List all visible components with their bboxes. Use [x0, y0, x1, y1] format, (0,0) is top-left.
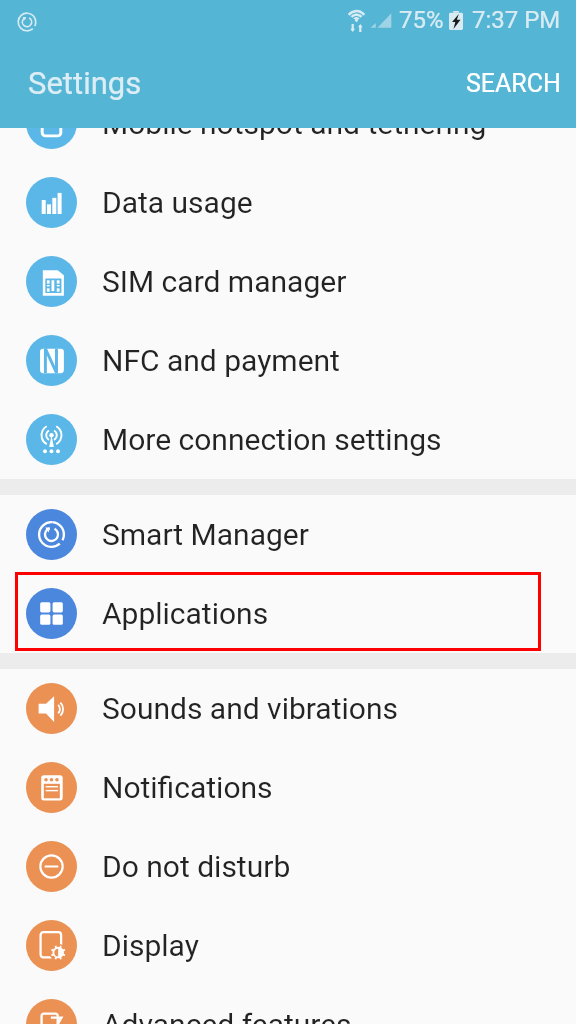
- staticText: Do not disturb: [102, 849, 291, 884]
- staticText: 7:37 PM: [472, 6, 561, 34]
- staticText: Mobile hotspot and tethering: [102, 106, 487, 141]
- staticText: 75%: [399, 6, 444, 34]
- button[interactable]: Sounds and vibrations: [0, 669, 576, 748]
- button[interactable]: SIM card manager: [0, 242, 576, 321]
- staticText: Settings: [28, 65, 142, 101]
- staticText: Advanced features: [102, 1007, 352, 1024]
- button[interactable]: Notifications: [0, 748, 576, 827]
- staticText: NFC and payment: [102, 343, 340, 378]
- staticText: Sounds and vibrations: [102, 691, 398, 726]
- button[interactable]: Smart Manager: [0, 495, 576, 574]
- staticText: Display: [102, 928, 199, 963]
- button[interactable]: Do not disturb: [0, 827, 576, 906]
- button[interactable]: More connection settings: [0, 400, 576, 479]
- button[interactable]: NFC and payment: [0, 321, 576, 400]
- other: Alarm: [16, 11, 38, 33]
- button[interactable]: Mobile hotspot and tethering: [0, 84, 576, 163]
- staticText: SIM card manager: [102, 264, 347, 299]
- staticText: SEARCH: [466, 69, 561, 98]
- staticText: More connection settings: [102, 422, 442, 457]
- button[interactable]: SEARCH: [451, 61, 576, 106]
- staticText: Data usage: [102, 185, 253, 220]
- staticText: Smart Manager: [102, 517, 309, 552]
- button[interactable]: Data usage: [0, 163, 576, 242]
- button[interactable]: Advanced features: [0, 985, 576, 1024]
- button[interactable]: Display: [0, 906, 576, 985]
- staticText: Notifications: [102, 770, 273, 805]
- button[interactable]: Applications: [0, 574, 576, 653]
- staticText: Applications: [102, 596, 269, 631]
